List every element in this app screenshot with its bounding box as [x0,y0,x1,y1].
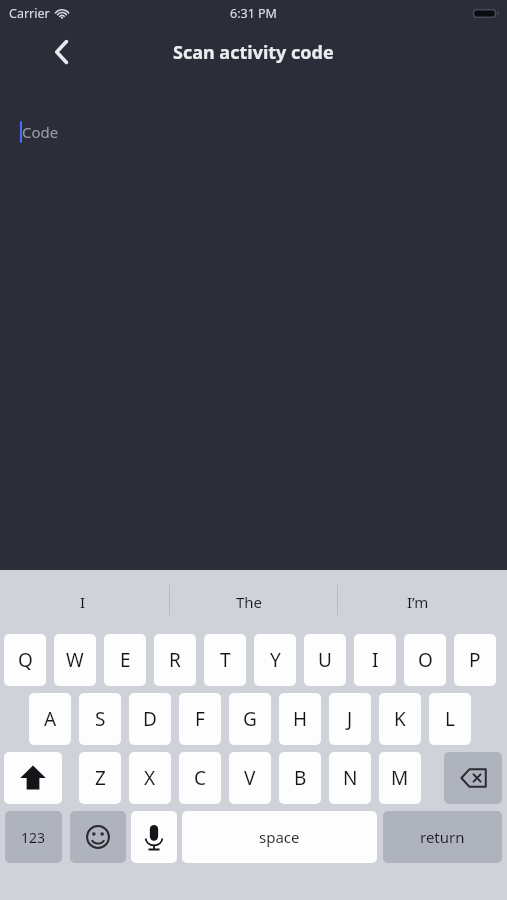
button[interactable]: J [329,693,371,745]
button[interactable]: S [79,693,121,745]
button[interactable]: Q [4,634,46,686]
button[interactable]: D [129,693,171,745]
staticText: space [259,827,300,847]
staticText: K [394,706,406,732]
staticText: Y [270,647,281,673]
button[interactable]: Emoji [70,811,126,863]
staticText: W [66,647,84,673]
staticText: S [95,706,106,732]
staticText: 6:31 PM [230,5,277,22]
staticText: Code [22,122,59,142]
staticText: Q [18,647,33,673]
button[interactable]: T [204,634,246,686]
staticText: H [293,706,308,732]
button[interactable]: Backspace [444,752,502,804]
button[interactable]: M [379,752,421,804]
button[interactable]: Code [20,119,57,145]
staticText: A [44,706,57,732]
button[interactable]: H [279,693,321,745]
staticText: M [391,765,409,791]
button[interactable]: R [154,634,196,686]
button[interactable]: K [379,693,421,745]
button[interactable]: return [383,811,502,863]
button[interactable]: B [279,752,321,804]
staticText: F [195,706,205,732]
staticText: The [236,592,263,612]
staticText: R [169,647,181,673]
button[interactable]: E [104,634,146,686]
button[interactable]: Z [79,752,121,804]
staticText: E [120,647,131,673]
button[interactable]: Back [40,30,84,74]
button[interactable]: F [179,693,221,745]
button[interactable]: N [329,752,371,804]
button[interactable]: 123 [5,811,62,863]
staticText: N [343,765,358,791]
staticText: G [243,706,257,732]
staticText: V [244,765,256,791]
button[interactable]: V [229,752,271,804]
button[interactable]: L [429,693,471,745]
staticText: C [194,765,207,791]
staticText: Scan activity code [173,40,334,65]
button[interactable]: space [182,811,377,863]
staticText: I [80,592,86,612]
button[interactable]: W [54,634,96,686]
staticText: J [347,706,353,732]
staticText: Z [95,765,106,791]
staticText: Carrier [9,5,50,22]
staticText: P [469,647,481,673]
staticText: O [418,647,433,673]
staticText: return [420,827,465,847]
staticText: B [294,765,307,791]
button[interactable]: A [29,693,71,745]
staticText: T [220,647,231,673]
button[interactable]: Dictate [131,811,177,863]
staticText: D [143,706,157,732]
button[interactable]: X [129,752,171,804]
button[interactable]: Shift [4,752,62,804]
staticText: U [318,647,332,673]
staticText: L [445,706,455,732]
staticText: I [372,647,379,673]
button[interactable]: O [404,634,446,686]
button[interactable]: G [229,693,271,745]
button[interactable]: Y [254,634,296,686]
staticText: I’m [407,592,429,612]
button[interactable]: P [454,634,496,686]
staticText: 123 [21,828,46,847]
button[interactable]: U [304,634,346,686]
button[interactable]: C [179,752,221,804]
button[interactable]: I [354,634,396,686]
staticText: X [144,765,156,791]
